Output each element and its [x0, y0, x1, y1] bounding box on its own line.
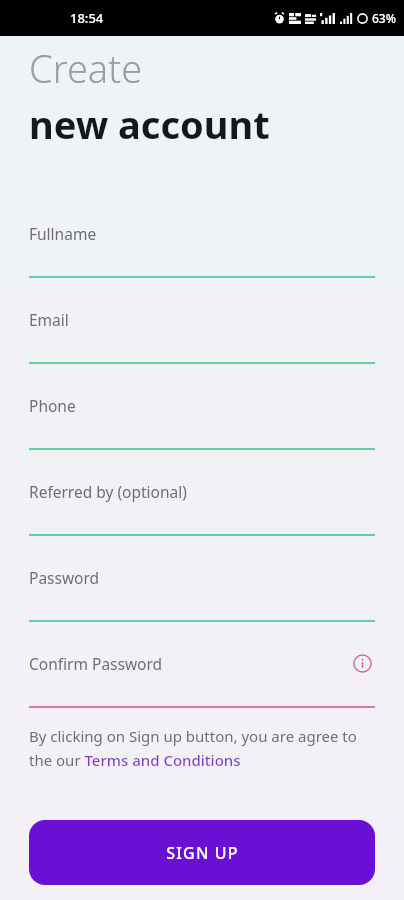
staticText: SIGN UP: [166, 842, 239, 864]
staticText: 18:54: [70, 9, 104, 27]
button[interactable]: By clicking on Sign up button, you are a…: [29, 726, 375, 770]
button[interactable]: Fullname: [29, 192, 375, 278]
staticText: Email: [29, 309, 69, 330]
button[interactable]: Password: [29, 536, 375, 622]
staticText: Phone: [29, 395, 76, 416]
button[interactable]: Referred by (optional): [29, 450, 375, 536]
button[interactable]: Phone: [29, 364, 375, 450]
staticText: Create: [29, 42, 143, 94]
staticText: Referred by (optional): [29, 481, 187, 502]
staticText: Confirm Password: [29, 653, 163, 674]
button[interactable]: Confirm Password: [29, 622, 375, 708]
staticText: new account: [29, 98, 270, 150]
staticText: Fullname: [29, 223, 97, 244]
button[interactable]: SIGN UP: [29, 820, 375, 885]
staticText: Password: [29, 567, 100, 588]
button[interactable]: Email: [29, 278, 375, 364]
staticText: 63%: [372, 10, 396, 26]
button[interactable]: Password mismatch info: [349, 650, 375, 676]
